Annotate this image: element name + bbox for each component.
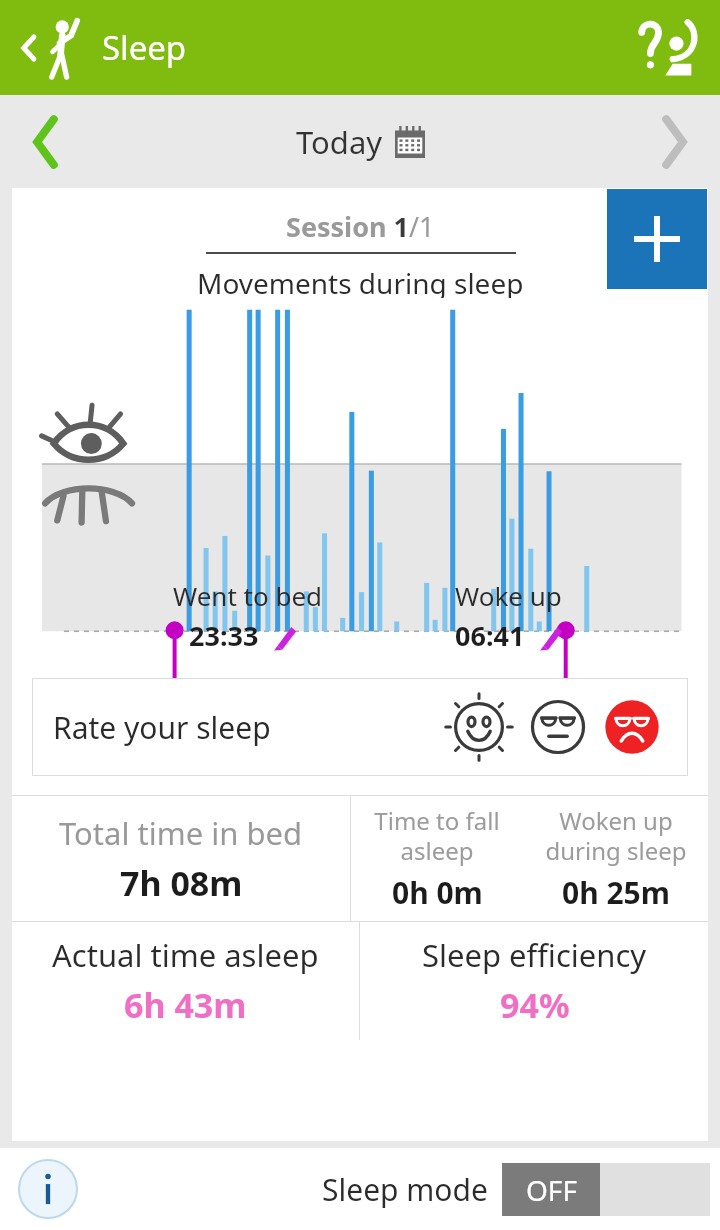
button[interactable]: Rate bad <box>595 690 669 764</box>
button[interactable]: Woke up <box>455 578 563 654</box>
staticText: Went to bed <box>173 578 323 613</box>
button[interactable]: Add session <box>607 189 707 289</box>
button[interactable]: Back to app list <box>14 17 102 79</box>
staticText: 6h 43m <box>124 982 247 1028</box>
staticText: Woke up <box>455 578 562 613</box>
button[interactable]: Rate neutral <box>521 690 595 764</box>
button[interactable]: Time to fall asleep <box>351 796 523 921</box>
staticText: Sleep efficiency <box>422 934 647 976</box>
staticText: Today <box>296 121 383 163</box>
button[interactable]: Total time in bed <box>12 796 350 921</box>
staticText: OFF <box>526 1171 577 1209</box>
staticText: Time to fall asleep <box>374 804 500 867</box>
staticText: 06:41 <box>455 617 525 654</box>
staticText: 0h 25m <box>562 872 671 913</box>
button[interactable]: Help <box>636 15 702 81</box>
staticText: Total time in bed <box>59 812 303 854</box>
button[interactable]: Actual time asleep <box>12 922 359 1040</box>
staticText: Sleep mode <box>322 1169 488 1210</box>
button[interactable]: Next day <box>638 106 710 178</box>
staticText: Woken up during sleep <box>545 804 687 867</box>
button[interactable]: Today <box>296 121 425 163</box>
button[interactable]: Went to bed <box>173 578 323 654</box>
button[interactable]: Woken up during sleep <box>523 796 708 921</box>
staticText: 94% <box>500 982 570 1028</box>
staticText: 0h 0m <box>392 872 483 913</box>
staticText: Movements during sleep <box>197 264 524 298</box>
button[interactable]: Information <box>16 1157 80 1221</box>
button[interactable]: Sleep efficiency <box>360 922 708 1040</box>
staticText: Actual time asleep <box>52 934 319 976</box>
button[interactable]: Previous day <box>10 106 82 178</box>
staticText: Rate your sleep <box>53 707 271 748</box>
staticText: 7h 08m <box>120 860 243 906</box>
staticText: Sleep <box>102 25 187 70</box>
button[interactable]: Sleep mode <box>322 1163 710 1216</box>
button[interactable]: Rate good <box>437 685 521 769</box>
staticText: Session 1/1 <box>286 208 435 245</box>
staticText: 23:33 <box>189 617 259 654</box>
